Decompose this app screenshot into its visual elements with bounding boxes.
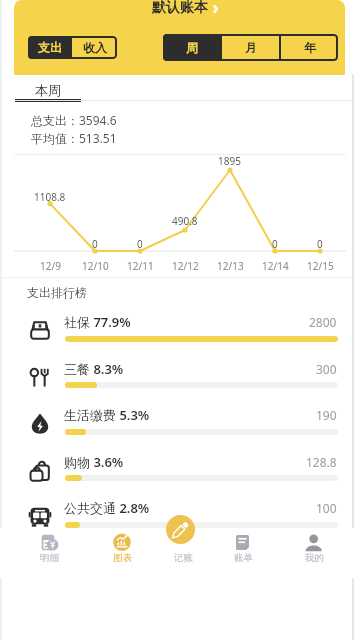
staticText: 0: [317, 237, 323, 251]
staticText: 年: [304, 40, 316, 55]
button[interactable]: 收入: [72, 36, 117, 59]
staticText: 支出: [38, 40, 62, 55]
staticText: 12/14: [262, 259, 289, 273]
staticText: 生活缴费 5.3%: [64, 406, 150, 424]
button[interactable]: [15, 304, 352, 346]
button[interactable]: 支出: [28, 36, 72, 59]
staticText: 100: [316, 500, 337, 516]
staticText: 月: [245, 40, 257, 55]
staticText: 128.8: [306, 454, 337, 470]
staticText: 12/11: [127, 259, 154, 273]
staticText: 12/15: [307, 259, 334, 273]
button[interactable]: [150, 530, 210, 570]
staticText: 12/12: [172, 259, 199, 273]
staticText: 本周: [35, 82, 61, 98]
staticText: 记账: [174, 552, 193, 564]
staticText: 我的: [305, 552, 324, 564]
staticText: 明细: [40, 552, 59, 564]
staticText: 三餐 8.3%: [64, 360, 124, 378]
button[interactable]: 本周: [15, 78, 81, 102]
button[interactable]: 月: [222, 34, 279, 61]
button[interactable]: [15, 444, 352, 486]
staticText: 0: [92, 237, 98, 251]
staticText: ›: [208, 0, 219, 19]
staticText: 12/10: [82, 259, 109, 273]
button[interactable]: [284, 530, 344, 570]
staticText: 周: [186, 40, 198, 55]
button[interactable]: [213, 530, 273, 570]
staticText: 默认账本: [152, 0, 208, 17]
staticText: 平均值：513.51: [31, 130, 117, 146]
button[interactable]: 年: [281, 34, 338, 61]
button[interactable]: 默认账本: [152, 0, 219, 19]
staticText: 图表: [113, 552, 132, 564]
staticText: 0: [272, 237, 278, 251]
button[interactable]: 周: [163, 34, 220, 61]
staticText: 总支出：3594.6: [31, 112, 117, 128]
button[interactable]: [166, 515, 195, 544]
button[interactable]: [15, 397, 352, 439]
button[interactable]: [92, 530, 152, 570]
staticText: 490.8: [172, 214, 198, 228]
staticText: 2800: [309, 314, 337, 330]
staticText: 190: [316, 407, 337, 423]
staticText: 社保 77.9%: [64, 313, 131, 331]
staticText: 账单: [234, 552, 253, 564]
button[interactable]: [15, 490, 352, 532]
staticText: 12/13: [217, 259, 244, 273]
staticText: 公共交通 2.8%: [64, 499, 150, 517]
button[interactable]: [15, 351, 352, 393]
staticText: 300: [316, 361, 337, 377]
staticText: 0: [137, 237, 143, 251]
staticText: 收入: [83, 40, 107, 55]
staticText: 1108.8: [34, 190, 66, 204]
staticText: 1895: [218, 154, 241, 168]
staticText: 12/9: [40, 259, 61, 273]
staticText: 购物 3.6%: [64, 453, 124, 471]
button[interactable]: [18, 530, 78, 570]
staticText: 支出排行榜: [27, 285, 87, 300]
